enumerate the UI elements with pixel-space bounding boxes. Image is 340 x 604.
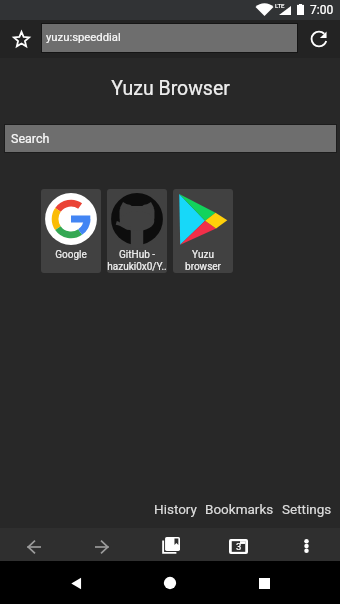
staticText: 3: [236, 541, 242, 552]
button[interactable]: Google: [41, 189, 101, 273]
button[interactable]: yuzu:speeddial: [42, 24, 297, 52]
staticText: Bookmarks: [205, 501, 274, 517]
staticText: Google: [41, 249, 101, 261]
staticText: Yuzu Browser: [111, 77, 230, 100]
staticText: LTE: [275, 2, 285, 9]
staticText: History: [154, 501, 197, 517]
staticText: Yuzu browser: [173, 249, 233, 272]
button[interactable]: Tabs, 3 open: [221, 531, 256, 561]
staticText: yuzu:speeddial: [46, 31, 121, 44]
button[interactable]: Search: [5, 125, 336, 152]
button[interactable]: Recent apps: [246, 565, 282, 601]
button[interactable]: Bookmarks: [205, 501, 274, 517]
button[interactable]: Reload: [303, 23, 335, 55]
button[interactable]: Settings: [282, 501, 332, 517]
button[interactable]: Add bookmark: [5, 23, 37, 55]
staticText: Settings: [282, 501, 332, 517]
button[interactable]: Back: [19, 532, 49, 561]
staticText: GitHub - hazuki0x0/Y..: [107, 249, 167, 272]
button[interactable]: Back: [58, 565, 94, 601]
button[interactable]: History: [154, 501, 197, 517]
staticText: Search: [11, 131, 50, 146]
staticText: 7:00: [310, 3, 334, 17]
button[interactable]: More options: [296, 531, 317, 561]
button[interactable]: Bookmarks: [154, 530, 188, 561]
button[interactable]: Home: [152, 565, 188, 601]
button[interactable]: Yuzu browser: [173, 189, 233, 273]
button[interactable]: Forward: [87, 532, 117, 561]
button[interactable]: GitHub - hazuki0x0/Y..: [107, 189, 167, 273]
